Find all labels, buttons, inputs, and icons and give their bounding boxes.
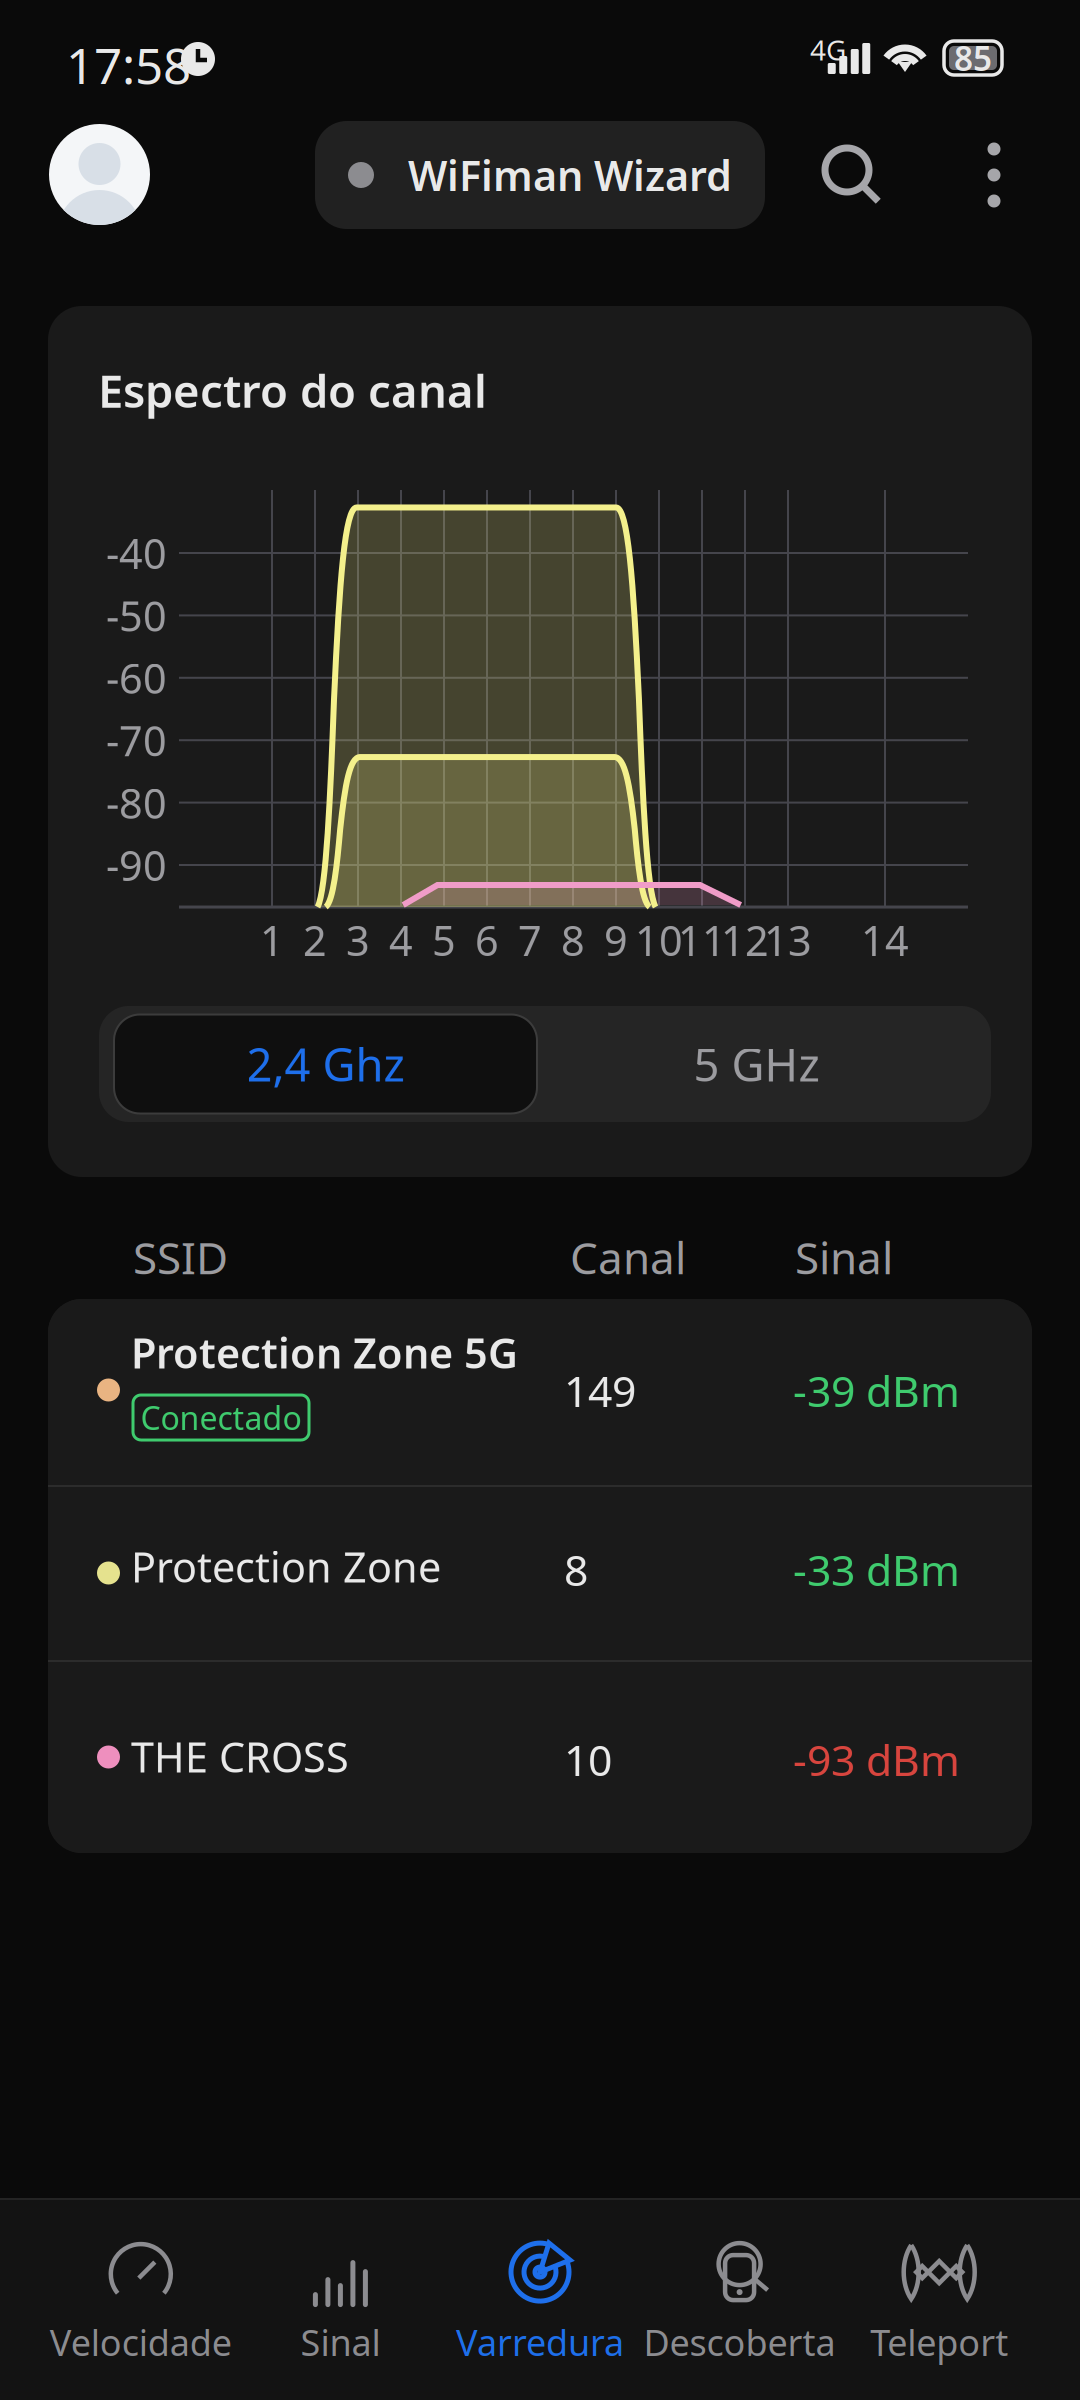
staticText: 11 bbox=[678, 913, 726, 967]
button[interactable]: WiFiman Wizard bbox=[315, 121, 765, 229]
staticText: THE CROSS bbox=[131, 1729, 349, 1784]
staticText: 2 bbox=[303, 913, 327, 967]
staticText: 10 bbox=[635, 913, 683, 967]
staticText: 149 bbox=[564, 1362, 636, 1419]
staticText: Canal bbox=[570, 1228, 686, 1286]
staticText: 12 bbox=[721, 913, 769, 967]
staticText: 4G bbox=[810, 31, 846, 68]
staticText: Espectro do canal bbox=[98, 360, 487, 420]
staticText: 14 bbox=[861, 913, 909, 967]
button[interactable]: THE CROSS bbox=[48, 1662, 1032, 1853]
button[interactable]: Teleport bbox=[839, 2199, 1039, 2400]
button[interactable]: Protection Zone bbox=[48, 1487, 1032, 1660]
staticText: 9 bbox=[604, 913, 628, 967]
button[interactable]: Protection Zone 5G bbox=[48, 1299, 1032, 1485]
staticText: Conectado bbox=[140, 1396, 301, 1439]
staticText: 17:58 bbox=[66, 32, 191, 97]
staticText: Velocidade bbox=[50, 2318, 232, 2366]
staticText: SSID bbox=[133, 1228, 228, 1286]
button[interactable]: 5 GHz bbox=[537, 1014, 976, 1113]
button[interactable]: Search bbox=[814, 139, 886, 211]
staticText: 8 bbox=[564, 1541, 588, 1598]
staticText: -80 bbox=[106, 775, 167, 830]
staticText: 85 bbox=[954, 36, 992, 80]
staticText: Descoberta bbox=[644, 2318, 836, 2366]
staticText: 4 bbox=[389, 913, 413, 967]
staticText: 8 bbox=[561, 913, 585, 967]
button[interactable]: Varredura bbox=[440, 2199, 640, 2400]
staticText: 7 bbox=[518, 913, 542, 967]
staticText: Varredura bbox=[456, 2318, 624, 2366]
button[interactable]: More options bbox=[958, 139, 1030, 211]
staticText: -39 dBm bbox=[793, 1362, 960, 1419]
staticText: Sinal bbox=[795, 1228, 893, 1286]
staticText: 3 bbox=[346, 913, 370, 967]
staticText: -93 dBm bbox=[793, 1731, 960, 1788]
staticText: -50 bbox=[106, 588, 167, 643]
staticText: 5 bbox=[432, 913, 456, 967]
staticText: 6 bbox=[475, 913, 499, 967]
button[interactable]: Velocidade bbox=[41, 2199, 241, 2400]
staticText: -40 bbox=[106, 526, 167, 580]
button[interactable]: Descoberta bbox=[640, 2199, 839, 2400]
staticText: 2,4 Ghz bbox=[246, 1034, 404, 1094]
staticText: WiFiman Wizard bbox=[408, 148, 732, 202]
button[interactable]: Profile bbox=[49, 124, 150, 225]
staticText: 10 bbox=[564, 1731, 612, 1788]
staticText: Sinal bbox=[300, 2318, 380, 2366]
staticText: 1 bbox=[260, 913, 284, 967]
staticText: -33 dBm bbox=[793, 1541, 960, 1598]
button[interactable]: Sinal bbox=[241, 2199, 440, 2400]
staticText: Teleport bbox=[870, 2318, 1008, 2366]
staticText: 5 GHz bbox=[693, 1034, 819, 1094]
staticText: 13 bbox=[764, 913, 812, 967]
button[interactable]: 2,4 Ghz bbox=[114, 1014, 537, 1113]
staticText: -90 bbox=[106, 838, 167, 892]
staticText: -70 bbox=[106, 713, 167, 768]
staticText: Protection Zone 5G bbox=[131, 1325, 518, 1380]
staticText: -60 bbox=[106, 650, 167, 705]
staticText: Protection Zone bbox=[131, 1539, 441, 1594]
